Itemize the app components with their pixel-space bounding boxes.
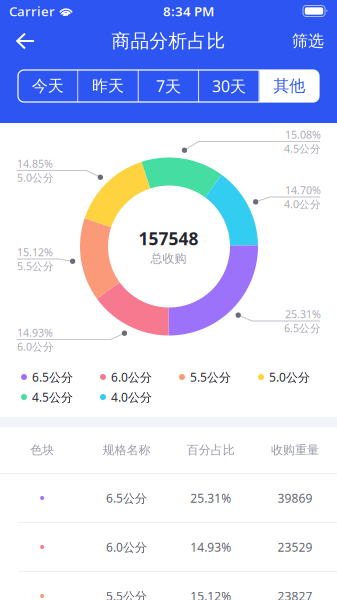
staticText: 4.5公分 bbox=[284, 141, 321, 156]
staticText: 14.70% bbox=[285, 183, 321, 197]
staticText: 总收购 bbox=[150, 251, 186, 266]
staticText: 157548 bbox=[138, 227, 198, 250]
staticText: 筛选 bbox=[292, 31, 324, 51]
staticText: 4.0公分 bbox=[111, 389, 152, 405]
staticText: 15.12% bbox=[17, 245, 53, 259]
staticText: Carrier bbox=[9, 2, 55, 20]
staticText: 4.5公分 bbox=[32, 389, 73, 405]
staticText: 6.0公分 bbox=[17, 339, 54, 354]
staticText: 6.5公分 bbox=[106, 490, 147, 506]
staticText: 昨天 bbox=[92, 76, 124, 96]
button[interactable]: Back bbox=[13, 26, 53, 56]
button[interactable]: 30天 bbox=[199, 70, 259, 102]
staticText: 8:34 PM bbox=[163, 2, 214, 20]
button[interactable]: 6.5公分 bbox=[0, 474, 337, 522]
staticText: 5.5公分 bbox=[190, 369, 231, 385]
button[interactable]: 7天 bbox=[139, 70, 198, 102]
button[interactable]: 5.5公分 bbox=[0, 572, 337, 600]
button[interactable]: 其他 bbox=[260, 70, 319, 102]
staticText: 23827 bbox=[277, 588, 312, 600]
button[interactable]: 今天 bbox=[18, 70, 77, 102]
button[interactable]: 6.0公分 bbox=[0, 523, 337, 571]
staticText: 6.5公分 bbox=[284, 321, 321, 335]
staticText: 14.93% bbox=[190, 539, 231, 555]
staticText: 14.85% bbox=[17, 156, 53, 171]
staticText: 23529 bbox=[277, 539, 312, 555]
staticText: 15.12% bbox=[190, 588, 231, 600]
staticText: 30天 bbox=[212, 75, 246, 97]
staticText: 6.0公分 bbox=[111, 369, 152, 385]
staticText: 6.5公分 bbox=[32, 369, 73, 385]
staticText: 5.5公分 bbox=[17, 259, 54, 273]
staticText: 39869 bbox=[277, 490, 312, 506]
staticText: 15.08% bbox=[285, 127, 321, 142]
staticText: 收购重量 bbox=[271, 443, 319, 457]
staticText: 其他 bbox=[273, 76, 305, 96]
button[interactable]: 昨天 bbox=[78, 70, 138, 102]
staticText: 4.0公分 bbox=[284, 197, 321, 211]
staticText: 5.0公分 bbox=[17, 170, 54, 185]
button[interactable]: 筛选 bbox=[284, 26, 324, 56]
staticText: 5.0公分 bbox=[269, 369, 310, 385]
staticText: 7天 bbox=[156, 75, 181, 97]
staticText: 6.0公分 bbox=[106, 539, 147, 555]
staticText: 14.93% bbox=[17, 325, 53, 340]
staticText: 5.5公分 bbox=[106, 588, 147, 600]
staticText: 25.31% bbox=[285, 307, 321, 321]
staticText: 商品分析占比 bbox=[111, 29, 225, 52]
staticText: 百分占比 bbox=[187, 443, 235, 457]
staticText: 色块 bbox=[30, 443, 54, 457]
staticText: 25.31% bbox=[190, 490, 231, 506]
staticText: 规格名称 bbox=[102, 443, 150, 457]
staticText: 今天 bbox=[32, 76, 64, 96]
